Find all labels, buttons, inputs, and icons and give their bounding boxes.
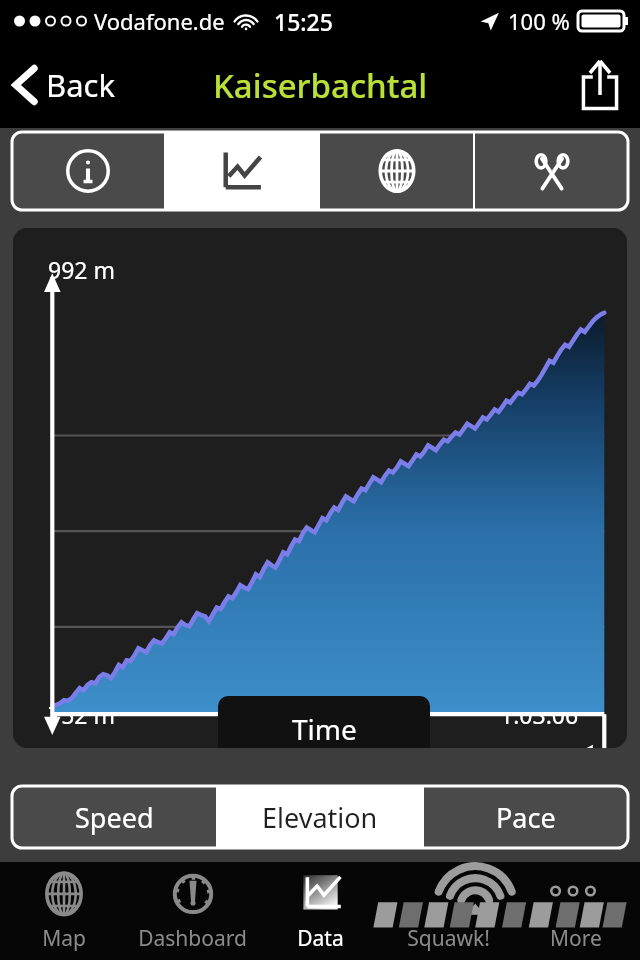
button[interactable]: Squawk! [384, 862, 512, 960]
staticText: Data [297, 924, 344, 953]
staticText: Time [292, 710, 357, 748]
button[interactable]: Data [256, 862, 384, 960]
staticText: Pace [496, 799, 556, 836]
staticText: 992 m [48, 254, 115, 285]
staticText: Back [46, 64, 115, 106]
staticText: 100 % [508, 6, 570, 36]
button[interactable]: Pace [424, 786, 628, 848]
staticText: More [550, 924, 602, 953]
button[interactable]: Speed [12, 786, 216, 848]
staticText: 15:25 [274, 6, 333, 37]
button[interactable]: Map [0, 862, 128, 960]
button[interactable]: Elevation [218, 786, 422, 848]
staticText: Dashboard [138, 924, 247, 953]
staticText: Map [42, 924, 86, 953]
button[interactable]: Info [12, 132, 164, 210]
button[interactable]: Cut [475, 132, 628, 210]
staticText: Squawk! [407, 924, 490, 953]
staticText: 1:03:06 [500, 699, 579, 730]
button[interactable]: Chart [166, 132, 318, 210]
button[interactable]: Time [218, 696, 430, 748]
staticText: Speed [75, 799, 154, 836]
staticText: Vodafone.de [94, 6, 225, 36]
button[interactable]: Map [320, 132, 473, 210]
staticText: Elevation [262, 799, 378, 836]
button[interactable]: Dashboard [128, 862, 256, 960]
staticText: Kaiserbachtal [213, 63, 428, 108]
button[interactable]: More [512, 862, 640, 960]
button[interactable]: Share [560, 42, 640, 128]
button[interactable]: Back [0, 42, 125, 128]
staticText: 752 m [48, 699, 115, 730]
